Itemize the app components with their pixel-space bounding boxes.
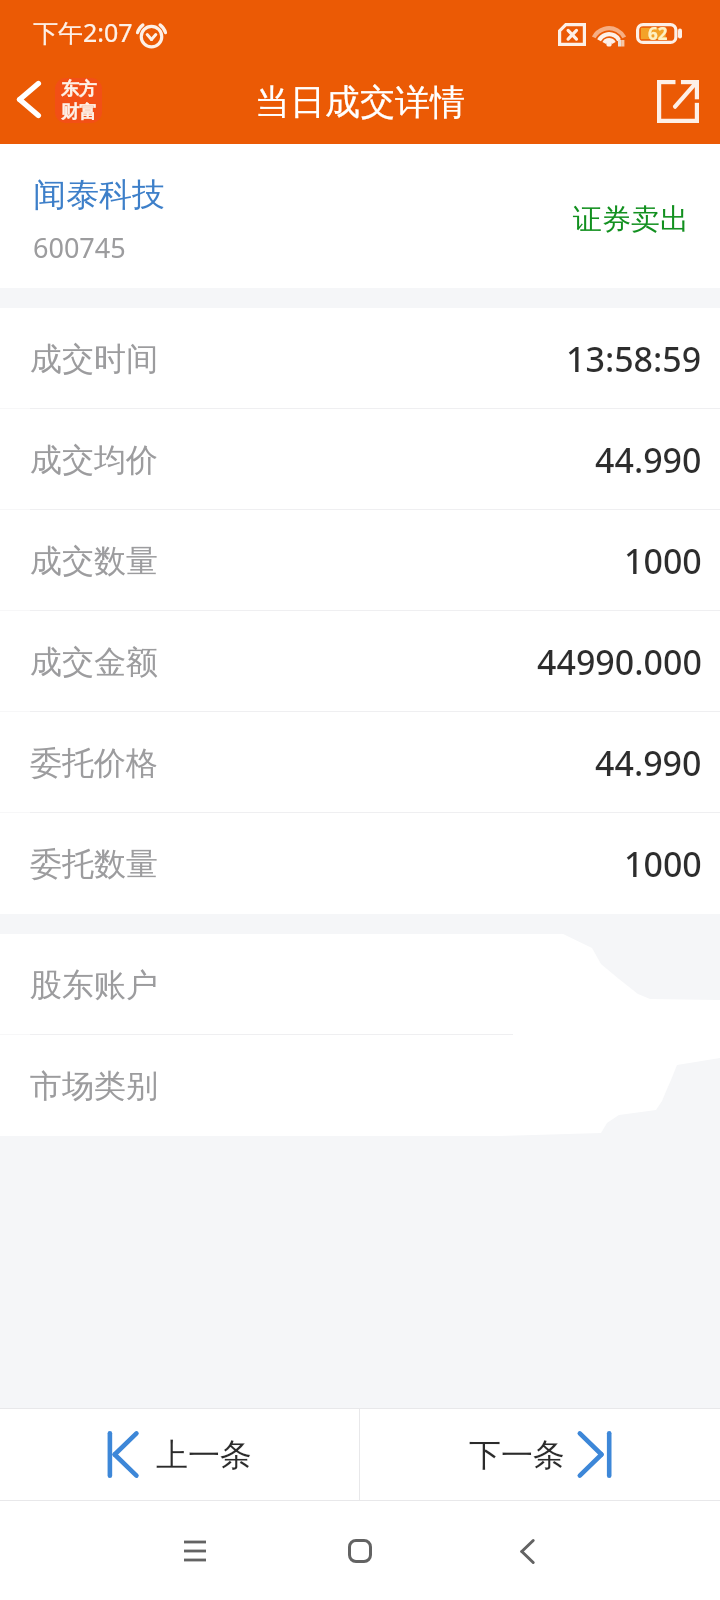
staticText: 1000 [624,538,702,584]
staticText: 62 [648,22,668,43]
staticText: 44990.000 [537,639,702,685]
staticText: 13:58:59 [566,336,702,382]
button[interactable]: Share [637,61,719,141]
button[interactable]: 东方财富 [55,78,102,123]
button[interactable]: Back [0,64,58,144]
button[interactable]: 成交均价 [0,409,720,510]
button[interactable]: Recents [155,1511,235,1591]
staticText: 600745 [33,229,126,266]
button[interactable]: 成交金额 [0,611,720,712]
staticText: 闻泰科技 [33,174,165,216]
staticText: 成交时间 [30,339,158,379]
staticText: 44.990 [595,437,702,483]
staticText: 成交金额 [30,642,158,682]
button[interactable]: Back [487,1511,567,1591]
staticText: 股东账户 [30,965,158,1005]
staticText: 证券卖出 [573,201,689,238]
staticText: 当日成交详情 [255,80,465,124]
button[interactable]: 上一条 [0,1408,359,1501]
staticText: 44.990 [595,740,702,786]
button[interactable]: 股东账户 [0,934,720,1035]
staticText: 委托价格 [30,743,158,783]
staticText: 下一条 [469,1435,565,1475]
staticText: 上一条 [156,1435,252,1475]
staticText: 市场类别 [30,1066,158,1106]
staticText: 1000 [624,841,702,887]
staticText: 财富 [61,101,97,123]
button[interactable]: 市场类别 [0,1035,720,1136]
button[interactable]: 下一条 [360,1408,720,1501]
staticText: 成交均价 [30,440,158,480]
staticText: 成交数量 [30,541,158,581]
staticText: 下午2:07 [33,15,133,49]
button[interactable]: 成交时间 [0,308,720,409]
button[interactable]: 委托价格 [0,712,720,813]
staticText: 东方 [61,78,97,101]
staticText: 委托数量 [30,844,158,884]
button[interactable]: 成交数量 [0,510,720,611]
button[interactable]: Home [320,1511,400,1591]
button[interactable]: 委托数量 [0,813,720,914]
